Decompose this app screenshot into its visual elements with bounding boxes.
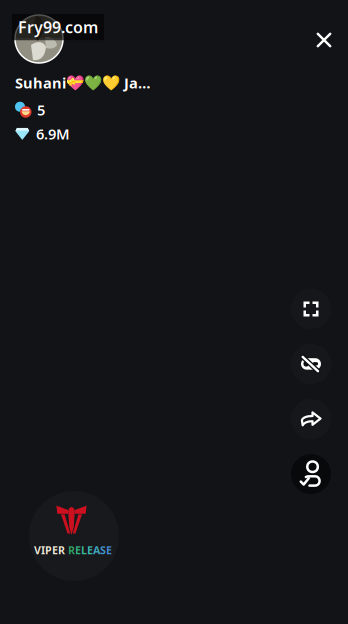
staticText: L (81, 543, 87, 557)
staticText: VIPER (34, 543, 65, 557)
staticText: 6.9M (36, 124, 70, 143)
staticText: Suhani💝💚💛 Ja… (15, 73, 151, 92)
staticText: E (106, 543, 112, 557)
button[interactable]: Close (304, 20, 344, 60)
button[interactable]: Unlink (289, 342, 333, 386)
staticText: E (87, 543, 93, 557)
staticText: A (93, 543, 100, 557)
staticText: R (68, 543, 75, 557)
staticText: Fry99.com (18, 16, 98, 38)
staticText: S (100, 543, 106, 557)
button[interactable]: Full screen (289, 287, 333, 331)
button[interactable]: Following (289, 452, 333, 496)
button[interactable]: Share (289, 397, 333, 441)
staticText: 5 (37, 100, 45, 119)
staticText: E (75, 543, 81, 557)
